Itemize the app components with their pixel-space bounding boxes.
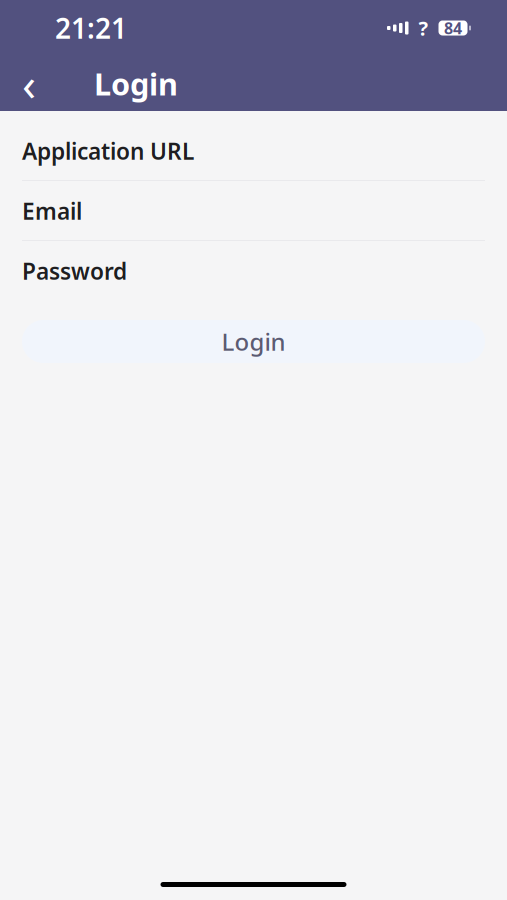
button[interactable]: Application URL	[22, 131, 485, 191]
staticText: 84	[444, 17, 462, 39]
staticText: Login	[94, 63, 178, 104]
button[interactable]: Login	[22, 320, 485, 363]
button[interactable]: Email	[22, 191, 485, 251]
staticText: Email	[22, 196, 82, 226]
staticText: Application URL	[22, 136, 194, 166]
staticText: Password	[22, 256, 127, 286]
staticText: Login	[221, 326, 285, 357]
button[interactable]: Back	[7, 61, 51, 105]
button[interactable]: Password	[22, 251, 485, 291]
staticText: ?	[418, 15, 428, 41]
staticText: 21:21	[55, 9, 127, 47]
staticText: ‹	[22, 53, 36, 114]
